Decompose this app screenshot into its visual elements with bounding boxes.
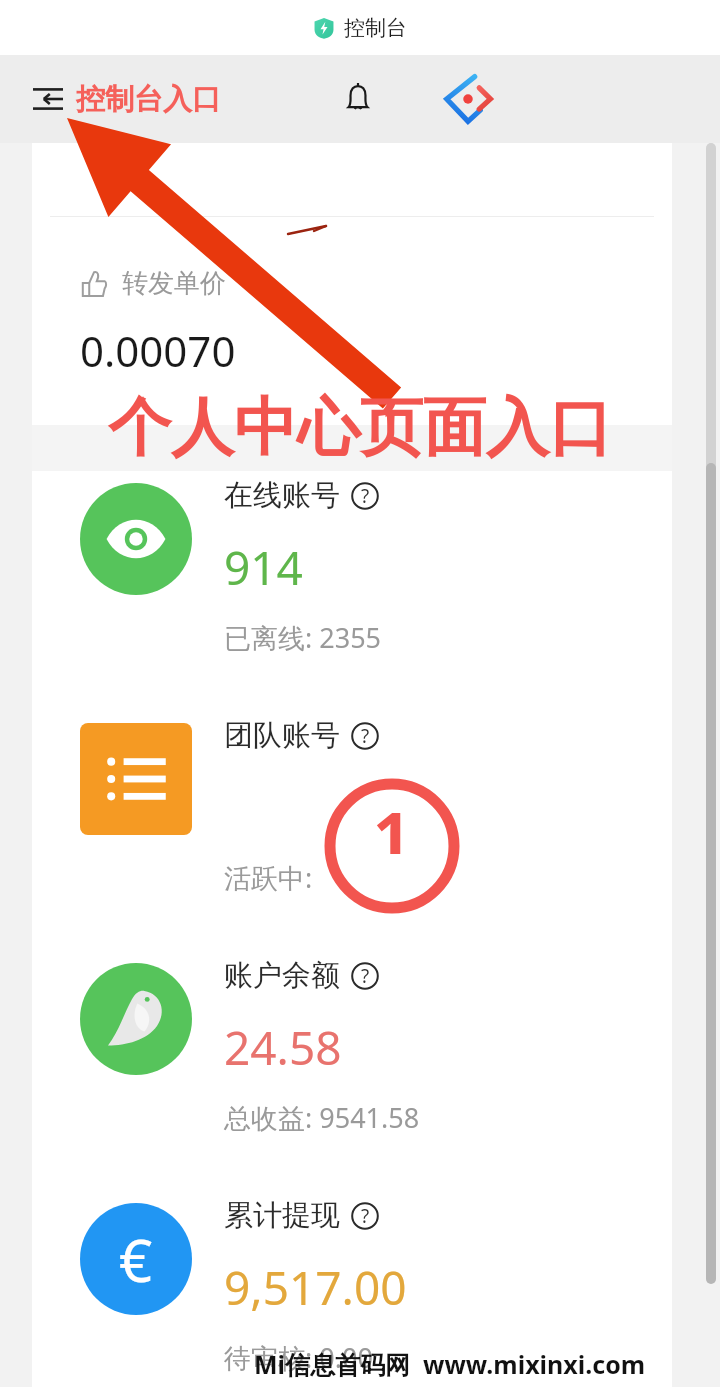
staticText: 9,517.00 — [224, 1256, 407, 1319]
staticText: 在线账号 — [224, 477, 340, 514]
staticText: 控制台 — [344, 15, 407, 41]
button[interactable]: Help — [350, 481, 380, 511]
staticText: ? — [361, 483, 370, 509]
staticText: Mi信息首码网 www.mixinxi.com — [254, 1347, 646, 1381]
button[interactable]: Help — [350, 721, 380, 751]
staticText: 账户余额 — [224, 957, 340, 994]
staticText: 转发单价 — [122, 267, 226, 300]
staticText: 活跃中: — [224, 859, 320, 896]
staticText: 个人中心页面入口 — [0, 388, 720, 467]
staticText: 团队账号 — [224, 717, 340, 754]
button[interactable]: Help — [350, 961, 380, 991]
staticText: 已离线: 2355 — [224, 619, 382, 656]
button[interactable]: Help — [350, 1201, 380, 1231]
button[interactable]: 团队账号 — [32, 699, 672, 939]
button[interactable]: App logo — [436, 67, 500, 131]
button[interactable]: 账户余额 — [32, 939, 672, 1179]
button[interactable]: Menu — [26, 77, 70, 121]
staticText: 24.58 — [224, 1016, 342, 1079]
button[interactable]: Notifications — [330, 71, 386, 127]
staticText: 待审核: 0.00 — [224, 1339, 373, 1376]
staticText: ? — [361, 723, 370, 749]
staticText: 累计提现 — [224, 1197, 340, 1234]
staticText: 914 — [224, 536, 303, 599]
staticText: ? — [361, 1203, 370, 1229]
staticText: 1 — [373, 790, 411, 854]
staticText: 0.00070 — [80, 322, 236, 379]
staticText: € — [119, 1220, 153, 1299]
button[interactable]: 控制台入口 — [76, 81, 221, 118]
button[interactable]: € — [32, 1179, 672, 1387]
staticText: ? — [361, 963, 370, 989]
staticText: 控制台入口 — [76, 81, 221, 118]
staticText: 总收益: 9541.58 — [224, 1099, 420, 1136]
button[interactable]: 在线账号 — [32, 459, 672, 699]
